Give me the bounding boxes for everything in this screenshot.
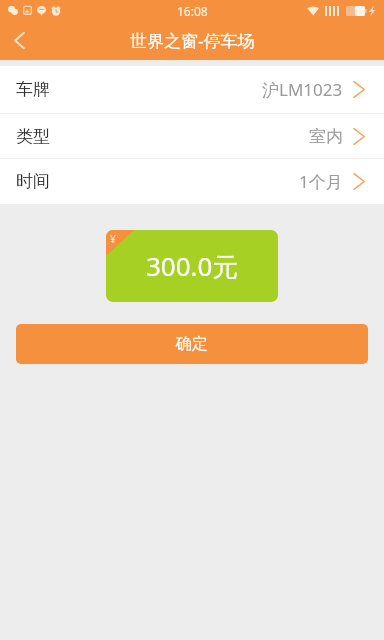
staticText: 300.0元 <box>146 248 239 284</box>
button[interactable]: 确定 <box>16 324 368 364</box>
staticText: 世界之窗-停车场 <box>130 29 255 52</box>
button[interactable]: ¥ <box>106 230 278 302</box>
staticText: 沪LM1023 <box>262 78 343 101</box>
button[interactable]: 时间 <box>0 159 384 204</box>
staticText: 1个月 <box>299 170 343 193</box>
staticText: 时间 <box>16 171 50 192</box>
staticText: 16:08 <box>177 3 208 19</box>
staticText: 室内 <box>309 126 343 147</box>
button[interactable]: 类型 <box>0 114 384 158</box>
staticText: 车牌 <box>16 79 50 100</box>
button[interactable]: Back <box>0 21 39 59</box>
staticText: 类型 <box>16 126 50 147</box>
staticText: 确定 <box>176 334 208 354</box>
button[interactable]: 车牌 <box>0 66 384 113</box>
staticText: ¥ <box>110 232 116 246</box>
